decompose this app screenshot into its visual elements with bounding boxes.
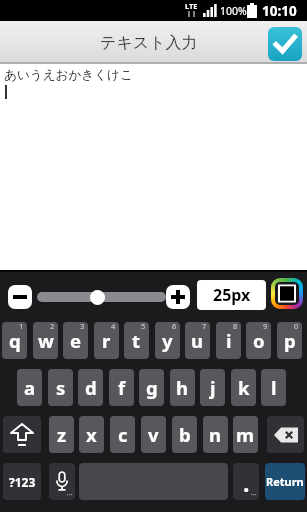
staticText: r (102, 328, 111, 353)
button[interactable] (8, 285, 32, 309)
staticText: ?123 (9, 474, 36, 490)
staticText: j (210, 375, 216, 400)
staticText: s (56, 375, 66, 400)
button[interactable]: c (110, 416, 135, 453)
button[interactable]: Return (265, 463, 305, 500)
button[interactable]: p (277, 322, 302, 359)
button[interactable]: o (246, 322, 271, 359)
staticText: 25px (213, 284, 251, 306)
button[interactable]: n (203, 416, 228, 453)
button[interactable]: i (216, 322, 241, 359)
button[interactable] (267, 416, 304, 453)
staticText: 1 (19, 322, 24, 331)
staticText: k (238, 375, 250, 400)
staticText: x (86, 422, 97, 447)
button[interactable]: d (78, 369, 103, 406)
staticText: あいうえおかきくけこ (4, 67, 133, 83)
button[interactable]: u (185, 322, 210, 359)
staticText: d (85, 375, 97, 400)
staticText: a (24, 375, 36, 400)
staticText: u (191, 328, 204, 353)
button[interactable]: z (49, 416, 74, 453)
button[interactable]: a (17, 369, 42, 406)
staticText: 100% (220, 4, 247, 18)
button[interactable]: h (170, 369, 195, 406)
button[interactable]: k (231, 369, 256, 406)
button[interactable] (271, 278, 303, 309)
staticText: LTE (185, 1, 198, 11)
button[interactable]: v (141, 416, 166, 453)
staticText: g (146, 375, 158, 400)
staticText: y (162, 328, 173, 353)
staticText: i (226, 328, 232, 353)
staticText: h (176, 375, 189, 400)
staticText: 9 (263, 322, 268, 331)
staticText: n (209, 422, 222, 447)
button[interactable]: w (33, 322, 58, 359)
button[interactable] (3, 416, 41, 453)
staticText: 10:10 (262, 2, 297, 20)
staticText: 7 (202, 322, 207, 331)
staticText: テキスト入力 (100, 33, 198, 53)
staticText: q (9, 328, 21, 353)
staticText: 3 (80, 322, 85, 331)
button[interactable] (268, 27, 302, 61)
button[interactable]: s (48, 369, 73, 406)
button[interactable]: x (79, 416, 104, 453)
staticText: f (118, 375, 126, 400)
button[interactable]: 25px (197, 280, 266, 310)
staticText: o (253, 328, 265, 353)
staticText: 8 (233, 322, 238, 331)
staticText: v (148, 422, 159, 447)
staticText: . (243, 467, 250, 498)
button[interactable]: l (261, 369, 286, 406)
staticText: l (271, 375, 277, 400)
button[interactable] (49, 463, 75, 500)
button[interactable] (166, 285, 190, 309)
staticText: 5 (141, 322, 146, 331)
staticText: w (38, 328, 54, 353)
button[interactable]: ?123 (3, 463, 41, 500)
button[interactable]: r (94, 322, 119, 359)
staticText: 0 (294, 322, 299, 331)
staticText: 4 (111, 322, 116, 331)
staticText: e (70, 328, 82, 353)
staticText: 6 (172, 322, 177, 331)
staticText: m (236, 422, 255, 447)
button[interactable]: q (2, 322, 27, 359)
button[interactable]: m (233, 416, 258, 453)
button[interactable]: e (63, 322, 88, 359)
staticText: t (132, 328, 141, 353)
button[interactable]: y (155, 322, 180, 359)
staticText: p (284, 328, 296, 353)
staticText: z (57, 422, 67, 447)
button[interactable]: b (172, 416, 197, 453)
button[interactable]: j (200, 369, 225, 406)
button[interactable]: f (109, 369, 134, 406)
staticText: b (179, 422, 191, 447)
button[interactable]: g (139, 369, 164, 406)
staticText: 2 (50, 322, 55, 331)
button[interactable]: . (233, 463, 259, 500)
staticText: Return (266, 474, 304, 489)
button[interactable]: t (124, 322, 149, 359)
staticText: c (118, 422, 128, 447)
